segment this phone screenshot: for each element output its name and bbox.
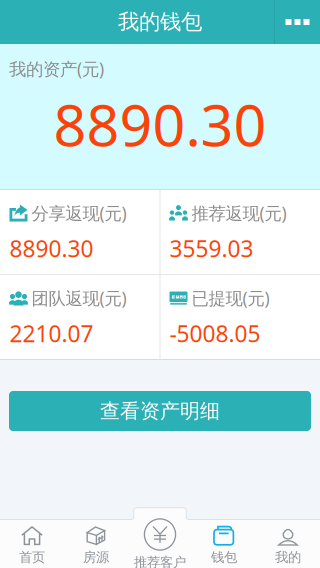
staticText: 我的资产(元) [9, 57, 104, 81]
button[interactable]: 我的 [256, 507, 320, 568]
button[interactable]: 房源 [64, 507, 128, 568]
staticText: 我的钱包 [118, 9, 202, 35]
button[interactable]: 首页 [0, 507, 64, 568]
staticText: 分享返现(元) [31, 201, 126, 225]
button[interactable]: 钱包 [192, 507, 256, 568]
button[interactable]: 推荐返现(元) [160, 190, 319, 274]
staticText: 8890.30 [9, 233, 93, 264]
button[interactable]: 已提现(元) [160, 275, 319, 359]
button[interactable]: 团队返现(元) [0, 275, 159, 359]
staticText: 钱包 [211, 549, 237, 566]
staticText: 房源 [83, 549, 109, 566]
button[interactable]: 推荐客户 [128, 507, 192, 568]
staticText: 8890.30 [53, 85, 266, 163]
staticText: 首页 [19, 549, 45, 566]
button[interactable]: 分享返现(元) [0, 190, 159, 274]
button[interactable]: More options [275, 0, 320, 44]
staticText: -5008.05 [169, 318, 260, 349]
staticText: 推荐客户 [134, 554, 186, 568]
staticText: 我的 [275, 549, 301, 566]
button[interactable]: 查看资产明细 [9, 391, 311, 431]
staticText: 查看资产明细 [100, 398, 220, 424]
staticText: 2210.07 [9, 318, 93, 349]
staticText: 3559.03 [169, 233, 253, 264]
staticText: 推荐返现(元) [191, 201, 286, 225]
staticText: 团队返现(元) [31, 286, 126, 310]
staticText: 已提现(元) [191, 286, 269, 310]
